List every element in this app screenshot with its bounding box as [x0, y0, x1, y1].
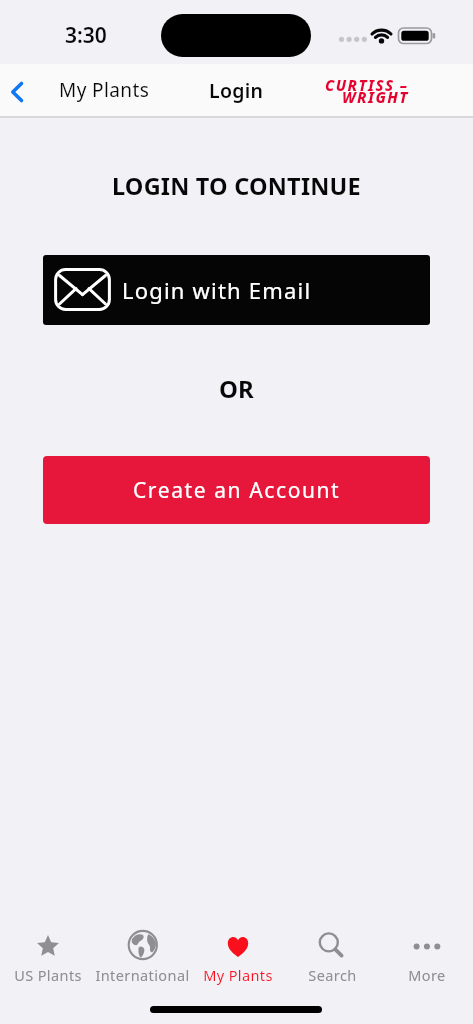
staticText: My Plants [59, 77, 150, 103]
button[interactable]: Login with Email [43, 255, 430, 325]
staticText: 3:30 [65, 21, 107, 50]
staticText: Search [308, 965, 357, 985]
button[interactable]: International [95, 905, 190, 1024]
button[interactable]: CURTISS – [325, 64, 409, 84]
staticText: International [95, 965, 190, 985]
button[interactable]: My Plants [0, 64, 150, 116]
button[interactable]: US Plants [0, 905, 95, 1024]
button[interactable]: Create an Account [43, 456, 430, 524]
button[interactable]: My Plants [190, 905, 285, 1024]
staticText: Create an Account [133, 476, 341, 505]
staticText: More [408, 965, 446, 985]
button[interactable]: Search [285, 905, 380, 1024]
staticText: Login with Email [122, 275, 312, 305]
button[interactable]: More [380, 905, 473, 1024]
staticText: My Plants [203, 965, 273, 985]
staticText: OR [219, 372, 254, 405]
staticText: CURTISS – [325, 75, 409, 95]
staticText: WRIGHT [342, 87, 409, 107]
staticText: Login [209, 77, 264, 104]
staticText: LOGIN TO CONTINUE [112, 170, 361, 202]
staticText: US Plants [14, 965, 82, 985]
